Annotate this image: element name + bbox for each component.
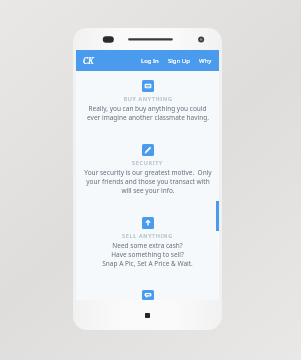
staticText: BUY ANYTHING bbox=[123, 95, 173, 102]
button[interactable]: Home logo bbox=[81, 53, 96, 68]
staticText: SECURITY bbox=[132, 159, 163, 166]
staticText: Your security is our greatest motive. On… bbox=[84, 168, 212, 177]
staticText: will see your info. bbox=[121, 186, 175, 195]
button[interactable]: Log In bbox=[140, 55, 160, 67]
staticText: Sign Up bbox=[168, 57, 190, 65]
staticText: Why bbox=[199, 57, 212, 65]
staticText: CK bbox=[83, 55, 94, 66]
staticText: ever imagine another classmate having. bbox=[87, 113, 209, 122]
button[interactable]: SECURITY bbox=[142, 144, 154, 156]
staticText: Really, you can buy anything you could bbox=[88, 104, 207, 113]
button[interactable]: Why bbox=[198, 55, 213, 67]
staticText: your friends and those you transact with bbox=[86, 177, 210, 186]
staticText: SELL ANYTHING bbox=[122, 232, 173, 239]
staticText: Log In bbox=[141, 57, 159, 65]
button[interactable]: Sign Up bbox=[167, 55, 191, 67]
staticText: Need some extra cash? bbox=[112, 241, 183, 250]
staticText: Snap A Pic, Set A Price & Wait. bbox=[102, 259, 193, 268]
button[interactable]: COMMUNICATE SEAMLESSLY bbox=[142, 290, 154, 300]
button[interactable]: SELL ANYTHING bbox=[142, 217, 154, 229]
staticText: Have something to sell? bbox=[111, 250, 184, 259]
button[interactable]: BUY ANYTHING bbox=[142, 80, 154, 92]
